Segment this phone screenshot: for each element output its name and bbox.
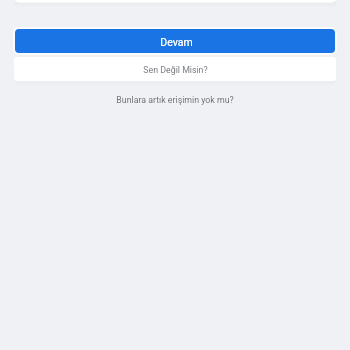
button[interactable]: Devam (15, 29, 335, 53)
button[interactable]: Sen Değil Misin? (14, 57, 336, 81)
staticText: Bunlara artık erişimin yok mu? (116, 95, 234, 105)
staticText: Sen Değil Misin? (143, 65, 208, 75)
button[interactable]: Bunlara artık erişimin yok mu? (106, 93, 244, 107)
staticText: Devam (160, 36, 193, 48)
